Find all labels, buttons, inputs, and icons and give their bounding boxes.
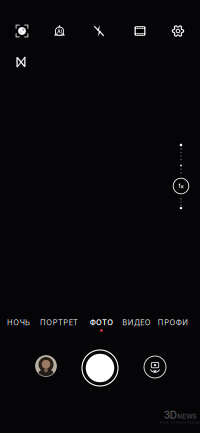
staticText: 3D — [164, 409, 177, 421]
staticText: ФОТО — [90, 318, 113, 327]
button[interactable]: Switch camera — [137, 349, 173, 385]
staticText: ВИДЕО — [122, 318, 151, 327]
button[interactable]: ВИДЕО — [122, 314, 151, 336]
staticText: ПОРТРЕТ — [40, 318, 78, 327]
button[interactable]: ПРОФИ — [158, 314, 188, 336]
staticText: НОЧЬ — [7, 318, 30, 327]
button[interactable]: Aspect ratio — [125, 18, 155, 44]
button[interactable]: Watermark off — [8, 50, 34, 74]
button[interactable]: AI scene recognition — [44, 17, 74, 43]
button[interactable]: Scene detection — [7, 18, 37, 44]
staticText: ПРОФИ — [158, 318, 188, 327]
button[interactable]: Zoom 1x — [169, 174, 193, 198]
button[interactable]: Flash off — [84, 18, 114, 44]
staticText: NEWS — [177, 413, 196, 420]
button[interactable]: НОЧЬ — [7, 314, 30, 336]
button[interactable]: Settings — [163, 18, 193, 44]
button[interactable]: ФОТО — [90, 314, 113, 336]
button[interactable]: Gallery — [29, 349, 63, 383]
staticText: Наука, техника и будущее — [158, 421, 200, 424]
button[interactable]: ПОРТРЕТ — [40, 314, 78, 336]
button[interactable]: Take photo — [78, 346, 122, 390]
